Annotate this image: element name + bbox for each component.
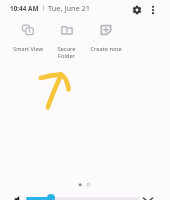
button[interactable]: Secure Folder: [47, 24, 86, 60]
button[interactable]: Expand: [142, 192, 154, 200]
button[interactable]: Create note: [86, 24, 125, 53]
staticText: Smart View: [13, 45, 43, 53]
staticText: Secure Folder: [57, 45, 76, 60]
staticText: Tue, June 21: [48, 3, 91, 13]
staticText: 10:44 AM: [10, 4, 39, 13]
button[interactable]: Sound: [12, 192, 24, 200]
button[interactable]: Settings: [129, 0, 145, 16]
button[interactable]: Volume: [26, 192, 140, 200]
staticText: Create note: [90, 45, 122, 53]
button[interactable]: More options: [146, 1, 160, 15]
button[interactable]: Smart View: [8, 24, 47, 53]
